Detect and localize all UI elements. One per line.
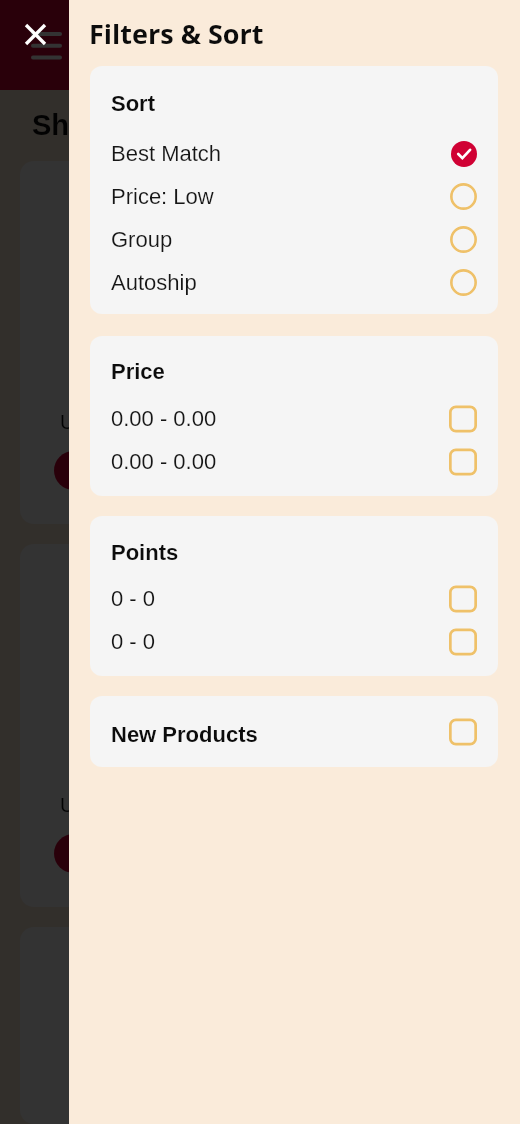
staticText: Unit price [60, 794, 145, 816]
staticText: Price [111, 359, 165, 384]
staticText: Best Match [111, 141, 222, 166]
button[interactable]: Price: Low [90, 175, 498, 218]
staticText: 0 - 0 [111, 629, 156, 654]
staticText: Shop [32, 109, 105, 141]
staticText: 0 - 0 [111, 586, 156, 611]
button[interactable]: Unit price [20, 161, 500, 524]
staticText: Filters & Sort [89, 15, 264, 52]
staticText: 0.00 - 0.00 [111, 449, 217, 474]
button[interactable]: Unit price [20, 927, 500, 1124]
button[interactable]: Menu [22, 21, 70, 69]
button[interactable]: Close [16, 15, 55, 54]
staticText: 0.00 - 0.00 [111, 406, 217, 431]
button[interactable]: Group [90, 218, 498, 261]
staticText: New Products [111, 722, 258, 747]
staticText: Points [111, 540, 179, 565]
staticText: Sort [111, 91, 155, 116]
button[interactable]: Autoship [90, 261, 498, 304]
staticText: Group [111, 227, 173, 252]
staticText: Unit price [60, 411, 145, 433]
staticText: Price: Low [111, 184, 214, 209]
button[interactable]: 0.00 - 0.00 [90, 397, 498, 440]
button[interactable]: Unit price [20, 544, 500, 907]
button[interactable]: 0 - 0 [90, 620, 498, 663]
button[interactable]: Best Match [90, 132, 498, 175]
button[interactable]: 0.00 - 0.00 [90, 440, 498, 483]
button[interactable]: 0 - 0 [90, 577, 498, 620]
button[interactable]: New Products [90, 696, 498, 767]
staticText: Autoship [111, 270, 197, 295]
